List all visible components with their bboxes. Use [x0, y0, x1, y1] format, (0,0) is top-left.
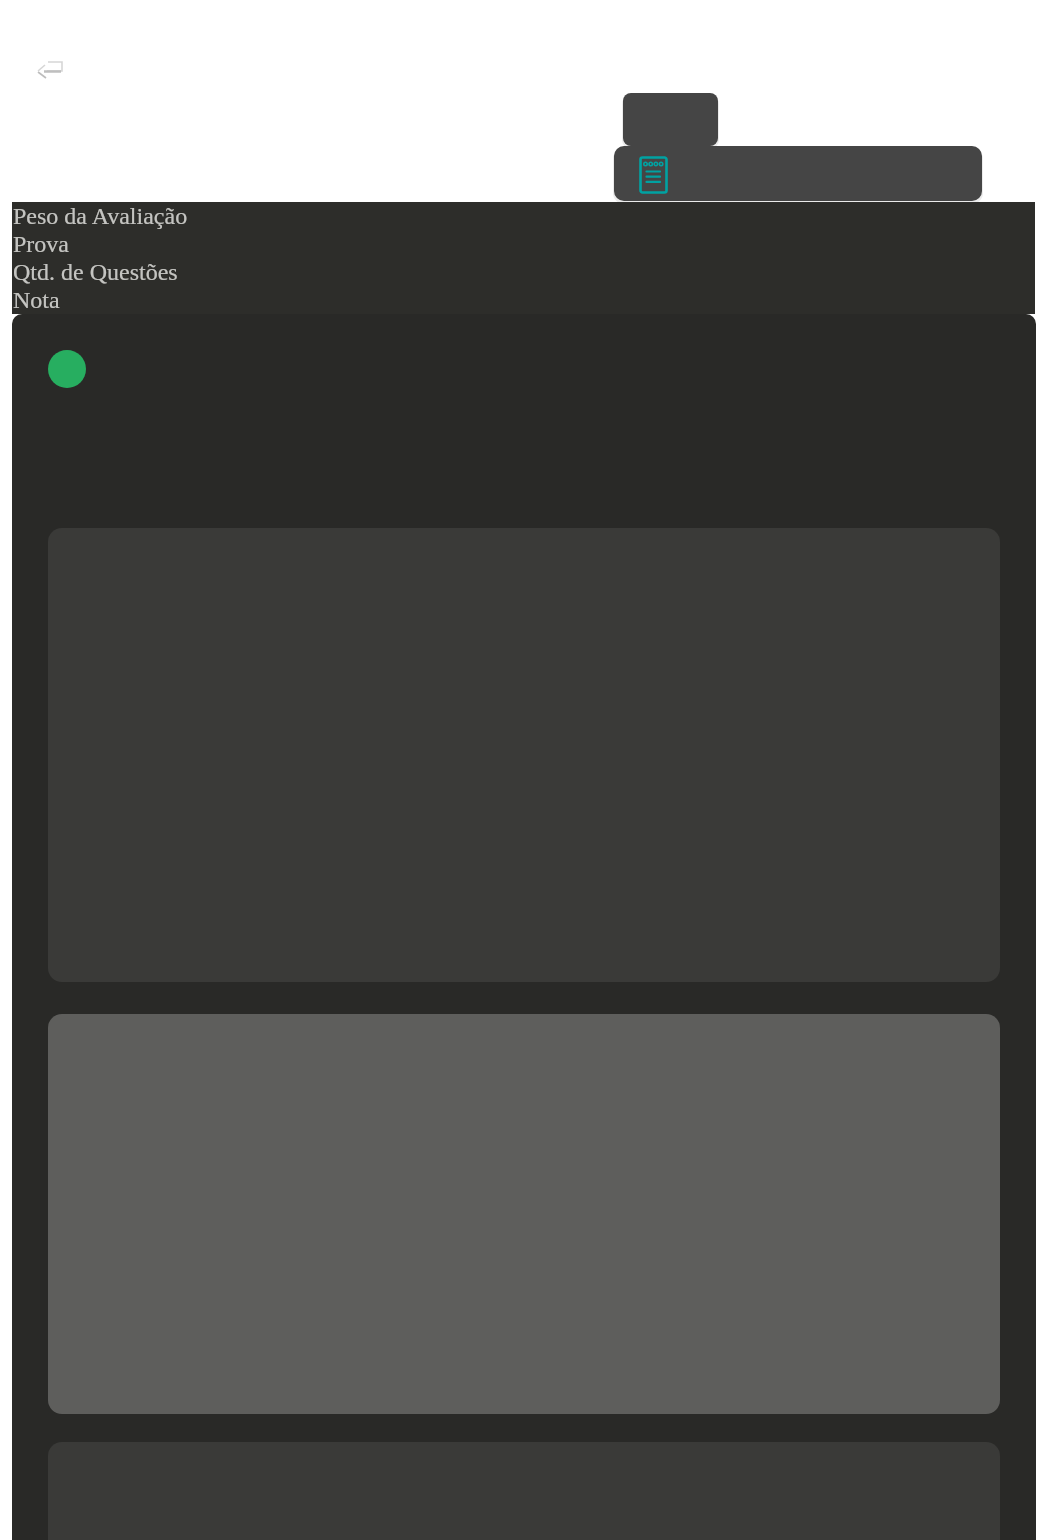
- button[interactable]: [623, 93, 718, 146]
- staticText: Prova: [13, 230, 69, 258]
- button[interactable]: [48, 350, 86, 388]
- staticText: Qtd. de Questões: [13, 258, 178, 286]
- button[interactable]: [614, 146, 982, 201]
- button[interactable]: [34, 54, 66, 82]
- staticText: Peso da Avaliação: [13, 202, 188, 230]
- staticText: Nota: [13, 286, 60, 314]
